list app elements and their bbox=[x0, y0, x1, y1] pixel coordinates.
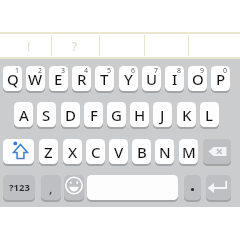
staticText: ? bbox=[72, 38, 78, 54]
staticText: O bbox=[192, 69, 204, 89]
button[interactable]: E bbox=[49, 66, 68, 91]
staticText: 7 bbox=[154, 66, 159, 76]
staticText: Y bbox=[124, 69, 133, 89]
button[interactable]: Y bbox=[119, 66, 138, 91]
staticText: 0 bbox=[223, 66, 228, 76]
staticText: A bbox=[19, 105, 29, 125]
staticText: V bbox=[114, 142, 124, 162]
button[interactable]: S bbox=[37, 102, 56, 127]
button[interactable]: A bbox=[14, 102, 33, 127]
button[interactable] bbox=[206, 175, 231, 200]
staticText: B bbox=[137, 142, 147, 162]
button[interactable]: ! bbox=[23, 36, 35, 56]
staticText: 2 bbox=[38, 66, 43, 76]
button[interactable]: Z bbox=[39, 139, 58, 164]
button[interactable]: F bbox=[84, 102, 103, 127]
button[interactable] bbox=[64, 175, 84, 200]
staticText: T bbox=[100, 69, 109, 89]
staticText: I bbox=[172, 69, 178, 89]
staticText: N bbox=[159, 142, 171, 162]
staticText: 8 bbox=[177, 66, 182, 76]
button[interactable]: R bbox=[72, 66, 91, 91]
button[interactable]: W bbox=[26, 66, 45, 91]
staticText: U bbox=[146, 69, 158, 89]
button[interactable]: O bbox=[188, 66, 207, 91]
staticText: F bbox=[90, 105, 98, 125]
staticText: D bbox=[65, 105, 76, 125]
staticText: J bbox=[160, 105, 165, 125]
staticText: K bbox=[182, 105, 192, 125]
button[interactable]: Q bbox=[3, 66, 22, 91]
staticText: 3 bbox=[61, 66, 66, 76]
button[interactable]: ? bbox=[69, 36, 81, 56]
staticText: R bbox=[77, 69, 87, 89]
button[interactable]: M bbox=[179, 139, 198, 164]
button[interactable]: D bbox=[61, 102, 80, 127]
button[interactable]: X bbox=[63, 139, 82, 164]
button[interactable]: B bbox=[132, 139, 151, 164]
staticText: 5 bbox=[107, 66, 112, 76]
staticText: 6 bbox=[131, 66, 136, 76]
staticText: 1 bbox=[15, 66, 20, 76]
button[interactable]: T bbox=[95, 66, 114, 91]
button[interactable]: K bbox=[177, 102, 196, 127]
staticText: M bbox=[182, 142, 196, 162]
staticText: X bbox=[68, 142, 78, 162]
button[interactable]: J bbox=[153, 102, 172, 127]
staticText: W bbox=[28, 69, 43, 89]
staticText: , bbox=[49, 179, 53, 197]
button[interactable]: I bbox=[165, 66, 184, 91]
button[interactable]: U bbox=[142, 66, 161, 91]
button[interactable]: ?123 bbox=[3, 175, 35, 200]
staticText: Z bbox=[44, 142, 53, 162]
button[interactable]: L bbox=[200, 102, 219, 127]
button[interactable] bbox=[203, 139, 231, 164]
staticText: 9 bbox=[200, 66, 205, 76]
staticText: E bbox=[54, 69, 63, 89]
button[interactable] bbox=[3, 139, 34, 164]
staticText: H bbox=[134, 105, 146, 125]
button[interactable] bbox=[87, 175, 178, 200]
button[interactable]: P bbox=[211, 66, 230, 91]
staticText: ?123 bbox=[9, 181, 30, 194]
staticText: 4 bbox=[84, 66, 89, 76]
staticText: Q bbox=[7, 69, 19, 89]
button[interactable]: N bbox=[155, 139, 174, 164]
staticText: S bbox=[42, 105, 51, 125]
button[interactable]: V bbox=[109, 139, 128, 164]
staticText: P bbox=[216, 69, 226, 89]
staticText: C bbox=[91, 142, 101, 162]
button[interactable]: , bbox=[41, 175, 61, 200]
button[interactable]: C bbox=[86, 139, 105, 164]
staticText: ! bbox=[27, 38, 31, 54]
staticText: L bbox=[205, 105, 214, 125]
button[interactable] bbox=[184, 175, 201, 200]
staticText: G bbox=[111, 105, 122, 125]
button[interactable]: G bbox=[107, 102, 126, 127]
button[interactable]: H bbox=[130, 102, 149, 127]
